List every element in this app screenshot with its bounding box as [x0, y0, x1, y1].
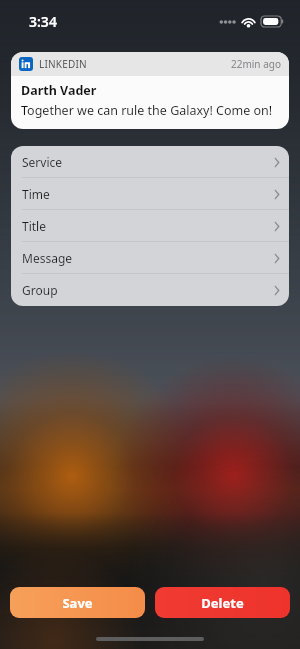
staticText: Save	[62, 594, 93, 612]
staticText: Service	[22, 154, 63, 170]
staticText: Delete	[201, 594, 244, 612]
button[interactable]: Time	[11, 178, 289, 210]
staticText: Message	[22, 250, 73, 266]
button[interactable]: Title	[11, 210, 289, 242]
staticText: Group	[22, 282, 58, 298]
button[interactable]: LINKEDIN	[11, 52, 289, 129]
staticText: LINKEDIN	[39, 57, 87, 71]
staticText: Time	[22, 186, 50, 202]
button[interactable]: Service	[11, 146, 289, 178]
staticText: Title	[22, 218, 46, 234]
staticText: Together we can rule the Galaxy! Come on…	[21, 102, 273, 119]
button[interactable]: Message	[11, 242, 289, 274]
staticText: Darth Vader	[21, 82, 97, 99]
button[interactable]: Save	[10, 587, 145, 618]
button[interactable]: Group	[11, 274, 289, 306]
staticText: 22min ago	[231, 57, 281, 71]
button[interactable]: Delete	[155, 587, 290, 618]
staticText: 3:34	[29, 12, 57, 31]
